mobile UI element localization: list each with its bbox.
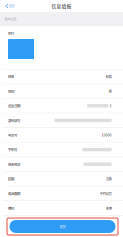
button[interactable]: 提交 xyxy=(7,218,118,235)
staticText: 提交 xyxy=(59,224,65,229)
button[interactable]: 姓名 xyxy=(0,70,123,84)
button[interactable]: 身份证号 xyxy=(0,113,123,127)
staticText: 照片 xyxy=(8,30,14,35)
staticText: 中共党员 xyxy=(99,191,111,196)
staticText: 男 xyxy=(108,89,111,94)
button[interactable]: 性别 xyxy=(0,84,123,98)
staticText: 身份证号 xyxy=(8,118,20,123)
button[interactable]: 政治面貌 xyxy=(0,186,123,200)
staticText: 考生号 xyxy=(8,132,17,137)
staticText: 手机号 xyxy=(8,147,17,152)
staticText: 未婚 xyxy=(105,205,111,210)
staticText: 汉族 xyxy=(105,176,111,181)
staticText: 民族 xyxy=(8,176,14,181)
staticText: 基本信息 xyxy=(4,17,16,21)
button[interactable]: 考生号 xyxy=(0,128,123,142)
button[interactable]: 民族 xyxy=(0,172,123,186)
staticText: 姓名 xyxy=(8,74,14,79)
staticText: 赵真 xyxy=(105,74,111,79)
button[interactable]: 出生日期 xyxy=(0,99,123,113)
button[interactable]: 联系电话 xyxy=(0,157,123,171)
staticText: 性别 xyxy=(8,89,14,94)
staticText: 3 xyxy=(109,103,111,108)
staticText: 信息填报 xyxy=(51,3,71,9)
staticText: 返回 xyxy=(9,4,15,8)
button[interactable]: 婚否 xyxy=(0,201,123,215)
button[interactable]: 返回 xyxy=(0,0,19,12)
button[interactable]: 手机号 xyxy=(0,143,123,157)
staticText: 政治面貌 xyxy=(8,191,20,196)
staticText: 联系电话 xyxy=(8,162,20,167)
staticText: 10000 xyxy=(101,132,111,137)
staticText: 婚否 xyxy=(8,205,14,210)
staticText: 出生日期 xyxy=(8,103,20,108)
